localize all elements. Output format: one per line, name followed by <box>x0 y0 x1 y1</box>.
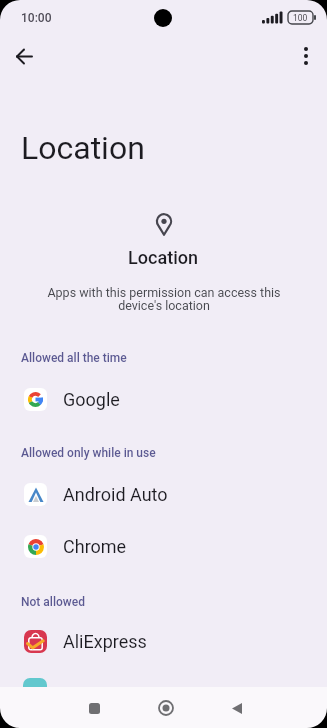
staticText: Chrome <box>63 536 127 557</box>
staticText: Allowed all the time <box>21 351 127 365</box>
staticText: Not allowed <box>21 595 85 609</box>
button[interactable] <box>291 41 321 71</box>
button[interactable]: Android Auto <box>0 476 327 513</box>
staticText: 100 <box>293 13 308 23</box>
staticText: Google <box>63 389 120 410</box>
staticText: Apps with this permission can access thi… <box>47 285 281 313</box>
button[interactable] <box>8 40 40 72</box>
staticText: AliExpress <box>63 631 147 652</box>
button[interactable] <box>221 692 253 724</box>
staticText: Android Auto <box>63 484 168 505</box>
staticText: 10:00 <box>21 11 52 25</box>
button[interactable] <box>150 692 182 724</box>
button[interactable]: Chrome <box>0 528 327 565</box>
button[interactable] <box>78 692 110 724</box>
button[interactable]: Google <box>0 381 327 418</box>
button[interactable]: AliExpress <box>0 623 327 660</box>
staticText: Allowed only while in use <box>21 446 156 460</box>
staticText: Location <box>128 247 199 268</box>
staticText: Location <box>21 129 145 167</box>
